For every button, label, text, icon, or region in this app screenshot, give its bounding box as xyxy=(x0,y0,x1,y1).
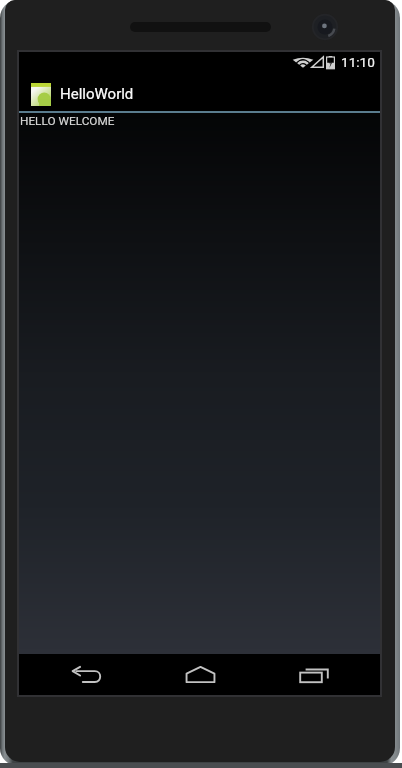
button[interactable]: Back xyxy=(33,654,141,695)
staticText: HelloWorld xyxy=(60,85,134,103)
button[interactable]: Home xyxy=(146,654,254,695)
staticText: HELLO WELCOME xyxy=(20,114,115,128)
button[interactable]: Recent apps xyxy=(260,654,368,695)
staticText: 11:10 xyxy=(341,54,375,70)
